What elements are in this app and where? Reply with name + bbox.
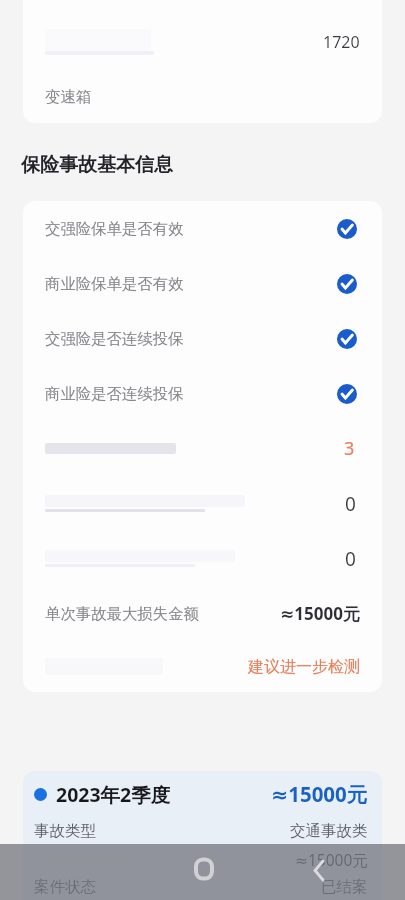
staticText: 交通事故类 xyxy=(290,821,368,841)
button[interactable]: 交强险保单是否有效 xyxy=(23,201,382,256)
staticText: 3 xyxy=(344,436,355,461)
staticText: 商业险是否连续投保 xyxy=(45,384,184,403)
staticText: 已结案 xyxy=(321,877,368,897)
staticText: ≈15000元 xyxy=(271,780,368,808)
button[interactable]: 0 xyxy=(23,531,382,586)
staticText: 变速箱 xyxy=(45,87,92,106)
staticText: 交强险是否连续投保 xyxy=(45,329,184,348)
staticText: ≈15000元 xyxy=(295,849,368,870)
staticText: 1720 xyxy=(323,31,360,53)
button[interactable]: 建议进一步检测 xyxy=(23,641,382,692)
button[interactable]: 单次事故最大损失金额 xyxy=(23,586,382,641)
staticText: 建议进一步检测 xyxy=(248,657,360,677)
staticText: 案件状态 xyxy=(34,877,96,897)
button[interactable]: 3 xyxy=(23,421,382,476)
button[interactable]: 变速箱 xyxy=(23,69,382,123)
button[interactable]: 0 xyxy=(23,476,382,531)
button[interactable]: 商业险是否连续投保 xyxy=(23,366,382,421)
button[interactable]: 交强险是否连续投保 xyxy=(23,311,382,366)
staticText: 交强险保单是否有效 xyxy=(45,219,184,238)
button[interactable]: 商业险保单是否有效 xyxy=(23,256,382,311)
staticText: 0 xyxy=(345,546,356,572)
staticText: ≈15000元 xyxy=(280,602,360,625)
staticText: 2023年2季度 xyxy=(56,781,171,808)
staticText: 0 xyxy=(345,491,356,517)
button[interactable]: Back xyxy=(306,856,330,882)
button[interactable]: Home xyxy=(194,857,214,881)
button[interactable]: 2023年2季度 xyxy=(34,771,368,817)
staticText: 事故类型 xyxy=(34,821,96,841)
staticText: 单次事故最大损失金额 xyxy=(45,604,199,623)
staticText: 保险事故基本信息 xyxy=(21,153,173,177)
staticText: 商业险保单是否有效 xyxy=(45,274,184,293)
button[interactable]: 1720 xyxy=(23,14,382,69)
